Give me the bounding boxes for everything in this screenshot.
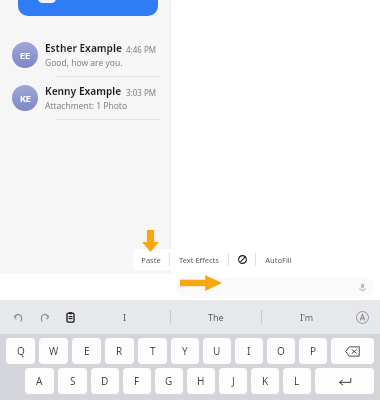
staticText: O <box>277 344 285 358</box>
button[interactable]: U <box>203 338 231 364</box>
button[interactable]: Backspace <box>331 338 374 364</box>
button[interactable]: R <box>105 338 134 364</box>
staticText: A <box>36 374 43 388</box>
button[interactable]: Paste <box>60 307 80 327</box>
button[interactable]: KE <box>0 77 170 119</box>
staticText: G <box>165 374 173 388</box>
button[interactable]: G <box>155 368 183 394</box>
button[interactable]: Dictate <box>176 277 374 297</box>
button[interactable]: K <box>251 368 279 394</box>
staticText: Paste <box>141 255 161 265</box>
button[interactable]: E <box>72 338 101 364</box>
button[interactable]: D <box>91 368 119 394</box>
button[interactable]: H <box>187 368 215 394</box>
button[interactable]: AutoFill <box>256 249 300 270</box>
staticText: Attachment: 1 Photo <box>45 100 128 112</box>
staticText: I <box>123 311 127 323</box>
staticText: EE <box>20 49 31 61</box>
button[interactable]: Undo <box>8 307 28 327</box>
staticText: L <box>294 374 300 388</box>
button[interactable]: Text Effects <box>170 249 228 270</box>
staticText: P <box>310 344 317 358</box>
staticText: Kenny Example <box>45 84 122 98</box>
staticText: U <box>213 344 221 358</box>
staticText: D <box>101 374 109 388</box>
staticText: Y <box>182 344 188 358</box>
staticText: T <box>150 344 156 358</box>
staticText: 3:03 PM <box>126 87 157 98</box>
button[interactable]: EE <box>0 34 170 76</box>
staticText: R <box>116 344 123 358</box>
button[interactable]: I <box>235 338 263 364</box>
button[interactable]: O <box>267 338 295 364</box>
button[interactable]: The <box>171 300 261 334</box>
staticText: Q <box>17 344 25 358</box>
button[interactable]: Y <box>171 338 199 364</box>
staticText: I <box>247 344 251 358</box>
staticText: I'm <box>300 311 314 323</box>
button[interactable]: A <box>25 368 54 394</box>
button[interactable]: Return <box>315 368 374 394</box>
button[interactable]: Paste <box>133 249 169 270</box>
button[interactable]: Q <box>6 338 35 364</box>
button[interactable]: I'm <box>262 300 352 334</box>
button[interactable]: S <box>58 368 87 394</box>
staticText: Text Effects <box>179 255 219 265</box>
staticText: E <box>84 344 90 358</box>
button[interactable]: Dictate <box>356 281 368 293</box>
staticText: Good, how are you. <box>45 57 123 69</box>
staticText: H <box>197 374 205 388</box>
button[interactable]: Redo <box>34 307 54 327</box>
button[interactable] <box>18 0 158 16</box>
staticText: J <box>232 374 235 388</box>
button[interactable]: W <box>39 338 68 364</box>
staticText: Esther Example <box>45 41 122 55</box>
staticText: S <box>70 374 76 388</box>
staticText: W <box>49 344 59 358</box>
button[interactable]: P <box>299 338 327 364</box>
staticText: F <box>134 374 140 388</box>
button[interactable]: I <box>80 300 170 334</box>
staticText: K <box>262 374 269 388</box>
staticText: AutoFill <box>265 255 292 265</box>
button[interactable]: J <box>219 368 247 394</box>
staticText: KE <box>20 92 31 104</box>
staticText: 4:46 PM <box>126 44 157 55</box>
button[interactable]: Text effect <box>229 249 255 270</box>
button[interactable]: L <box>283 368 311 394</box>
button[interactable]: F <box>123 368 151 394</box>
staticText: The <box>208 311 224 323</box>
button[interactable]: Formatting <box>352 307 372 327</box>
button[interactable]: T <box>138 338 167 364</box>
